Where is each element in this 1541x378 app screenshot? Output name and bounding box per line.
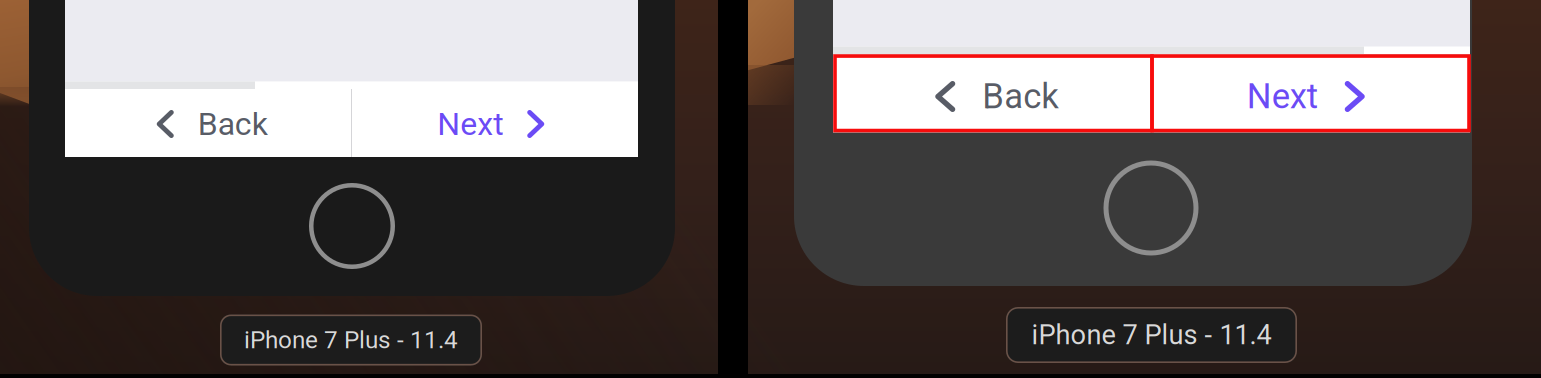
staticText: Back (198, 105, 268, 143)
staticText: iPhone 7 Plus - 11.4 (1031, 319, 1271, 351)
button[interactable]: Back (65, 89, 351, 157)
staticText: Next (437, 105, 503, 143)
staticText: Next (1247, 76, 1318, 117)
staticText: iPhone 7 Plus - 11.4 (244, 326, 458, 354)
button[interactable]: Next (1151, 54, 1470, 132)
button[interactable]: Next (351, 89, 638, 157)
button[interactable]: Back (833, 54, 1151, 132)
staticText: Back (982, 76, 1059, 117)
